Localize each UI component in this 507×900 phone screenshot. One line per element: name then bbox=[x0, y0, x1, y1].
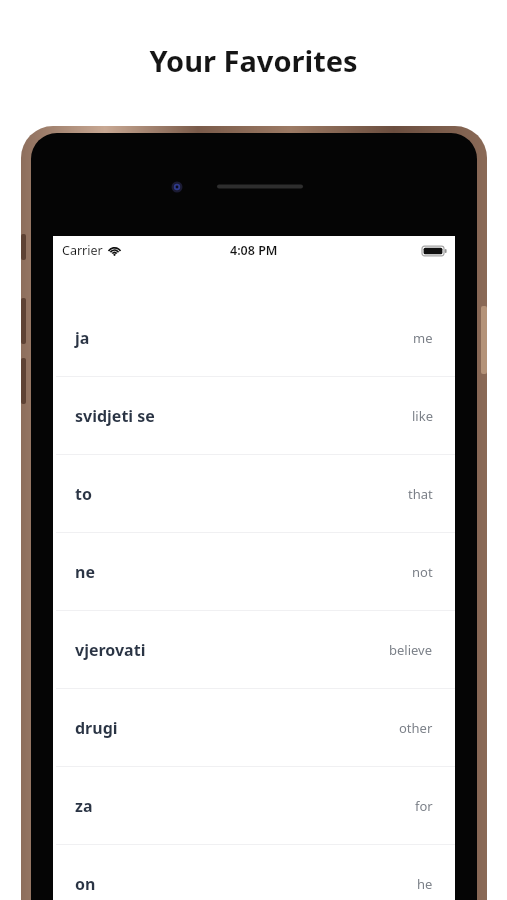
staticText: Carrier bbox=[62, 242, 103, 259]
staticText: vjerovati bbox=[75, 639, 146, 661]
staticText: on bbox=[75, 873, 96, 895]
staticText: me bbox=[413, 329, 433, 347]
staticText: for bbox=[415, 797, 433, 815]
button[interactable]: ja bbox=[53, 299, 455, 377]
staticText: ja bbox=[75, 327, 90, 349]
button[interactable]: vjerovati bbox=[53, 611, 455, 689]
staticText: believe bbox=[389, 641, 433, 659]
staticText: 4:08 PM bbox=[230, 242, 278, 259]
staticText: ne bbox=[75, 561, 95, 583]
staticText: za bbox=[75, 795, 93, 817]
staticText: other bbox=[399, 719, 433, 737]
button[interactable]: ne bbox=[53, 533, 455, 611]
staticText: drugi bbox=[75, 717, 118, 739]
staticText: Your Favorites bbox=[149, 41, 358, 80]
staticText: not bbox=[412, 563, 433, 581]
button[interactable]: drugi bbox=[53, 689, 455, 767]
staticText: to bbox=[75, 483, 92, 505]
staticText: that bbox=[408, 485, 433, 503]
button[interactable]: svidjeti se bbox=[53, 377, 455, 455]
staticText: svidjeti se bbox=[75, 405, 155, 427]
staticText: he bbox=[417, 875, 433, 893]
staticText: like bbox=[412, 407, 433, 425]
button[interactable]: to bbox=[53, 455, 455, 533]
button[interactable]: za bbox=[53, 767, 455, 845]
button[interactable]: on bbox=[53, 845, 455, 900]
